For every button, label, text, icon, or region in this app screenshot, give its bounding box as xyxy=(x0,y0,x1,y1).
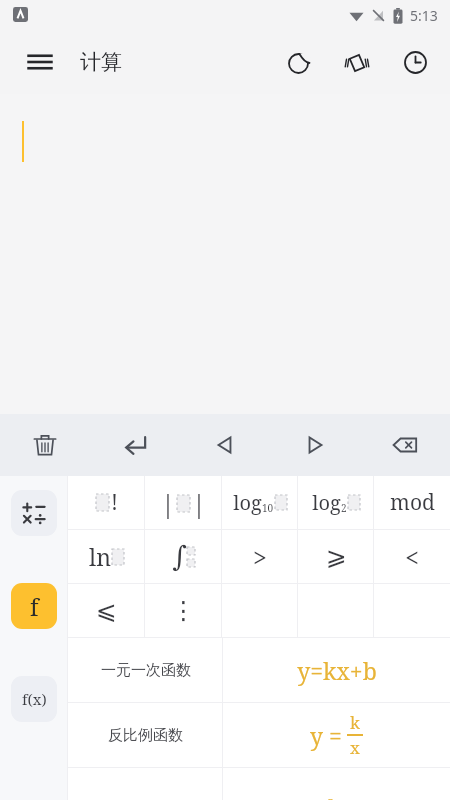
staticText: 2 xyxy=(327,794,335,800)
button[interactable]: Menu xyxy=(14,36,66,88)
button[interactable]: ⩽ xyxy=(68,584,145,637)
staticText: k xyxy=(350,711,360,734)
staticText: ! xyxy=(111,488,118,517)
staticText: 一元一次函数 xyxy=(101,661,191,680)
staticText: x xyxy=(350,736,360,759)
button[interactable]: log xyxy=(298,476,374,529)
button[interactable]: | xyxy=(145,476,222,529)
staticText: ln xyxy=(89,541,111,572)
button[interactable]: Shake to clear xyxy=(328,33,386,91)
staticText: f(x) xyxy=(22,689,47,709)
staticText: | xyxy=(161,486,175,520)
staticText: 2 xyxy=(341,501,347,515)
button[interactable]: y=kx+b xyxy=(223,638,450,702)
button[interactable]: Move left xyxy=(180,414,270,476)
button[interactable]: < xyxy=(374,530,450,583)
staticText: < xyxy=(405,540,419,574)
staticText: mod xyxy=(390,488,435,517)
button[interactable]: y = xyxy=(223,703,450,767)
button[interactable]: 一元一次函数 xyxy=(68,638,223,702)
button[interactable]: > xyxy=(222,530,298,583)
button[interactable]: mod xyxy=(374,476,450,529)
button[interactable]: Move right xyxy=(270,414,360,476)
button[interactable]: Basic operators xyxy=(11,490,57,536)
staticText: ⩾ xyxy=(326,542,347,571)
staticText: ⩽ xyxy=(96,596,117,625)
staticText: log xyxy=(233,489,262,516)
staticText: | xyxy=(192,486,206,520)
button[interactable]: Functions xyxy=(11,583,57,629)
button[interactable]: y=ax xyxy=(223,768,450,800)
staticText: y=kx+b xyxy=(297,655,377,686)
button[interactable]: Function graphs xyxy=(11,676,57,722)
staticText: f xyxy=(30,591,39,622)
button[interactable]: 反比例函数 xyxy=(68,703,223,767)
button[interactable]: ! xyxy=(68,476,145,529)
button[interactable]: Theme xyxy=(270,33,328,91)
button[interactable]: ∫ xyxy=(145,530,222,583)
staticText: > xyxy=(253,540,267,574)
button[interactable]: ln xyxy=(68,530,145,583)
button[interactable]: Backspace xyxy=(360,414,450,476)
staticText: ∫ xyxy=(172,540,187,573)
button[interactable]: log xyxy=(222,476,298,529)
staticText: ⋮ xyxy=(171,596,196,625)
staticText: log xyxy=(312,489,341,516)
button[interactable]: History xyxy=(386,33,444,91)
staticText: y = xyxy=(310,720,342,751)
button[interactable]: New line xyxy=(90,414,180,476)
staticText: 5:13 xyxy=(410,6,438,25)
button[interactable]: ⩾ xyxy=(298,530,374,583)
staticText: 反比例函数 xyxy=(108,726,183,745)
button[interactable]: Clear all xyxy=(0,414,90,476)
staticText: 计算 xyxy=(80,49,122,75)
staticText: 10 xyxy=(262,501,274,515)
button[interactable]: ⋮ xyxy=(145,584,222,637)
